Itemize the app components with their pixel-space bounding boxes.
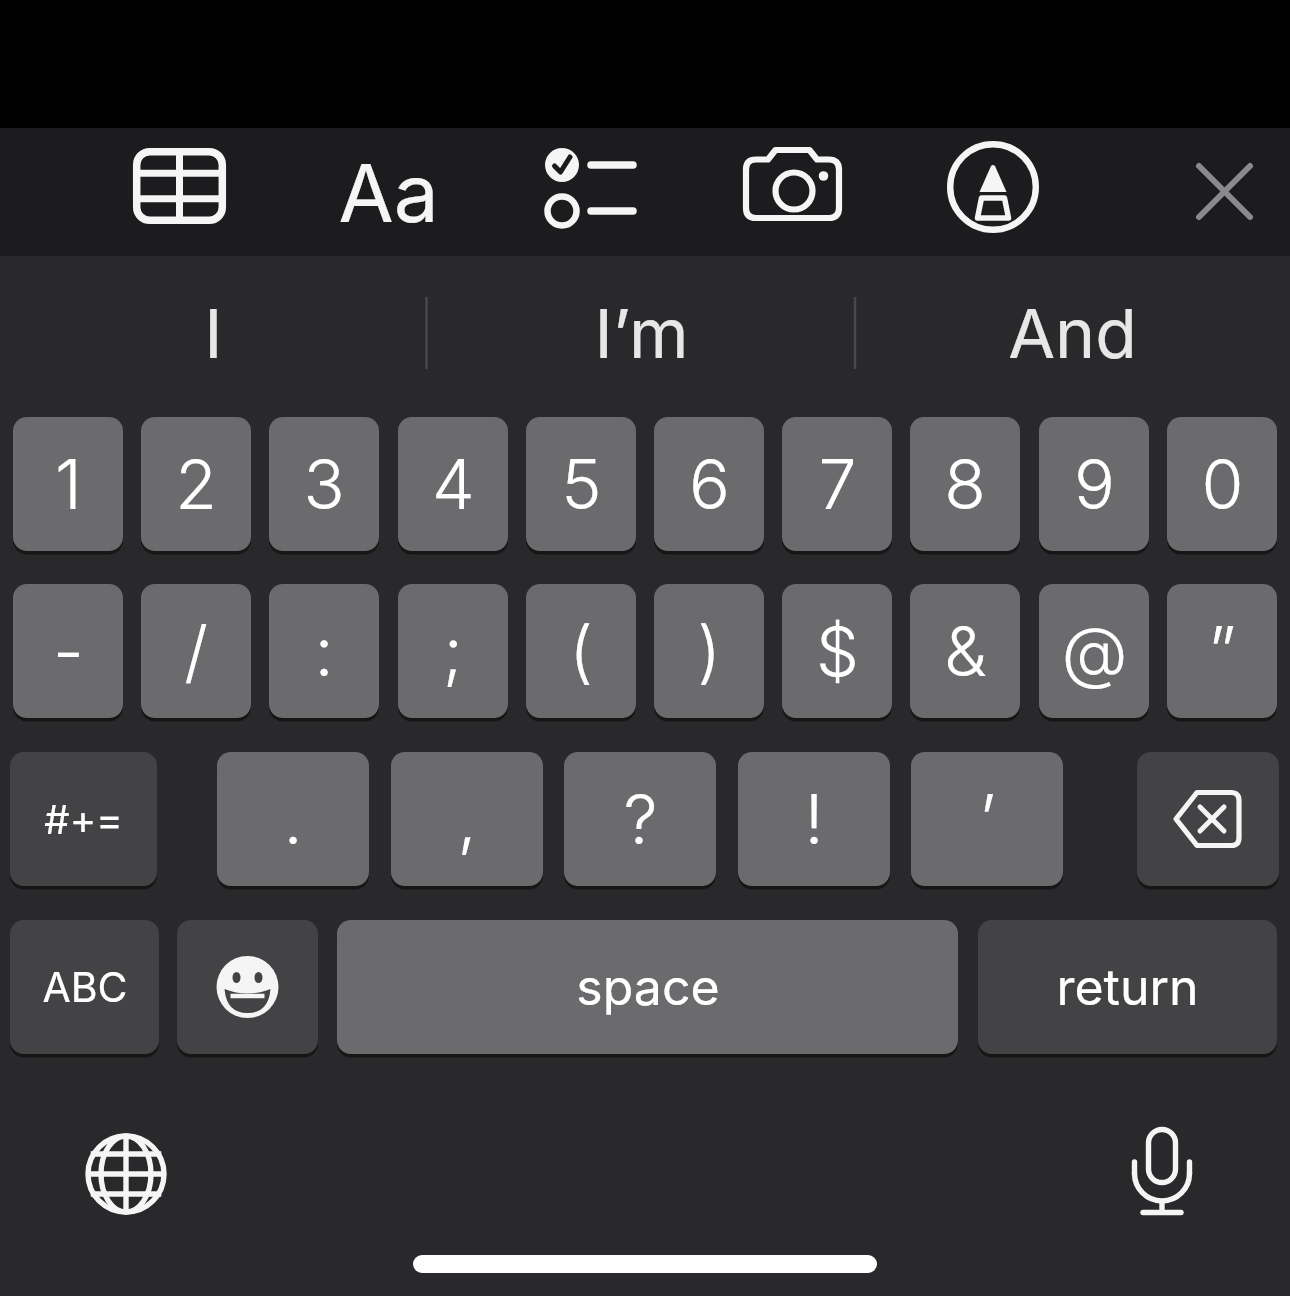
staticText: ; [443,610,463,692]
button[interactable]: . [217,752,369,886]
button[interactable]: 3 [269,417,379,551]
button[interactable] [133,148,226,224]
button[interactable]: 5 [526,417,636,551]
button[interactable]: & [910,584,1020,718]
staticText: 8 [944,443,986,525]
button[interactable]: And [855,256,1290,410]
staticText: 7 [818,443,857,525]
staticText: Aa [338,144,439,241]
button[interactable]: - [13,584,123,718]
staticText: / [184,610,208,692]
button[interactable]: 7 [782,417,892,551]
button[interactable] [746,146,842,226]
button[interactable]: return [978,920,1277,1054]
button[interactable]: 2 [141,417,251,551]
button[interactable]: 8 [910,417,1020,551]
staticText: 5 [561,443,602,525]
button[interactable]: 9 [1039,417,1149,551]
staticText: @ [1061,610,1128,692]
staticText: return [1056,957,1199,1017]
staticText: ABC [42,962,128,1012]
staticText: I’m [594,292,689,374]
staticText: 1 [55,443,82,525]
button[interactable]: ’ [911,752,1063,886]
button[interactable] [1137,752,1279,886]
button[interactable]: space [337,920,958,1054]
staticText: #+= [44,795,123,843]
button[interactable]: $ [782,584,892,718]
staticText: 2 [175,443,217,525]
button[interactable]: , [391,752,543,886]
button[interactable] [177,920,318,1054]
staticText: ) [697,610,721,692]
button[interactable]: ” [1167,584,1277,718]
staticText: 4 [432,443,475,525]
button[interactable]: 0 [1167,417,1277,551]
button[interactable]: Aa [330,128,446,256]
button[interactable] [1186,153,1263,230]
staticText: 3 [303,443,345,525]
staticText: , [457,778,477,860]
staticText: . [283,778,303,860]
button[interactable]: 4 [398,417,508,551]
staticText: 9 [1074,443,1115,525]
staticText: ’ [979,778,996,860]
staticText: ! [804,778,824,860]
button[interactable]: @ [1039,584,1149,718]
staticText: ” [1208,610,1236,692]
staticText: - [53,610,84,692]
staticText: I [204,292,223,374]
button[interactable]: I [0,256,427,410]
button[interactable]: 6 [654,417,764,551]
staticText: And [1008,292,1137,374]
staticText: 0 [1201,443,1244,525]
staticText: ? [623,778,658,860]
button[interactable]: ; [398,584,508,718]
button[interactable] [538,140,643,235]
button[interactable]: / [141,584,251,718]
button[interactable]: : [269,584,379,718]
staticText: ( [569,610,593,692]
staticText: space [576,957,720,1017]
button[interactable] [947,141,1039,233]
staticText: $ [816,610,859,692]
staticText: & [944,610,987,692]
button[interactable]: #+= [10,752,157,886]
staticText: 6 [689,443,730,525]
button[interactable]: ? [564,752,716,886]
button[interactable]: ABC [10,920,159,1054]
button[interactable]: ) [654,584,764,718]
button[interactable]: 1 [13,417,123,551]
button[interactable]: ( [526,584,636,718]
button[interactable] [1112,1120,1212,1220]
button[interactable]: ! [738,752,890,886]
button[interactable] [76,1124,176,1224]
button[interactable]: I’m [427,256,855,410]
staticText: : [314,610,334,692]
